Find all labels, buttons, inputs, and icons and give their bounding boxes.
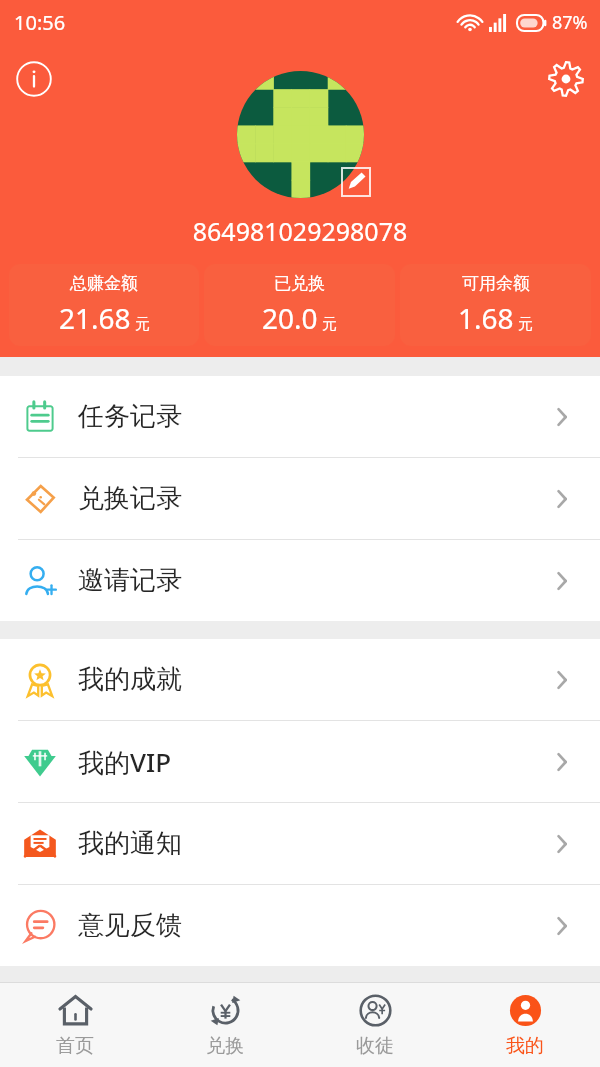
staticText: 兑换 (206, 1034, 244, 1058)
staticText: 21.68 (59, 299, 131, 337)
button[interactable]: 已兑换 (204, 264, 395, 346)
staticText: 87% (552, 10, 588, 35)
button[interactable]: 我的 (450, 983, 600, 1067)
button[interactable]: Settings (545, 58, 587, 100)
button[interactable]: 可用余额 (400, 264, 591, 346)
staticText: 首页 (56, 1034, 94, 1058)
staticText: 兑换记录 (78, 482, 182, 515)
staticText: 元 (135, 315, 150, 334)
button[interactable]: 兑换 (150, 983, 300, 1067)
button[interactable]: 收徒 (300, 983, 450, 1067)
staticText: 任务记录 (78, 400, 182, 433)
button[interactable]: 我的通知 (0, 803, 600, 884)
button[interactable]: 我的VIP (0, 721, 600, 802)
staticText: 总赚金额 (70, 273, 138, 294)
staticText: 邀请记录 (78, 564, 182, 597)
staticText: 已兑换 (274, 273, 325, 294)
button[interactable]: 兑换记录 (0, 458, 600, 539)
button[interactable]: 首页 (0, 983, 150, 1067)
staticText: 20.0 (262, 299, 318, 337)
button[interactable]: 我的成就 (0, 639, 600, 720)
staticText: 我的通知 (78, 827, 182, 860)
staticText: 收徒 (356, 1034, 394, 1058)
staticText: 我的VIP (78, 744, 172, 780)
staticText: 我的 (506, 1034, 544, 1058)
button[interactable]: 总赚金额 (9, 264, 199, 346)
staticText: 可用余额 (462, 273, 530, 294)
staticText: 元 (322, 315, 337, 334)
staticText: 1.68 (458, 299, 514, 337)
button[interactable]: 邀请记录 (0, 540, 600, 621)
button[interactable]: Avatar (237, 71, 364, 198)
staticText: 我的成就 (78, 663, 182, 696)
staticText: 元 (518, 315, 533, 334)
button[interactable]: 意见反馈 (0, 885, 600, 966)
button[interactable]: 任务记录 (0, 376, 600, 457)
staticText: 10:56 (14, 9, 66, 36)
button[interactable]: Info (13, 58, 55, 100)
staticText: 864981029298078 (0, 214, 600, 248)
staticText: 意见反馈 (78, 909, 182, 942)
